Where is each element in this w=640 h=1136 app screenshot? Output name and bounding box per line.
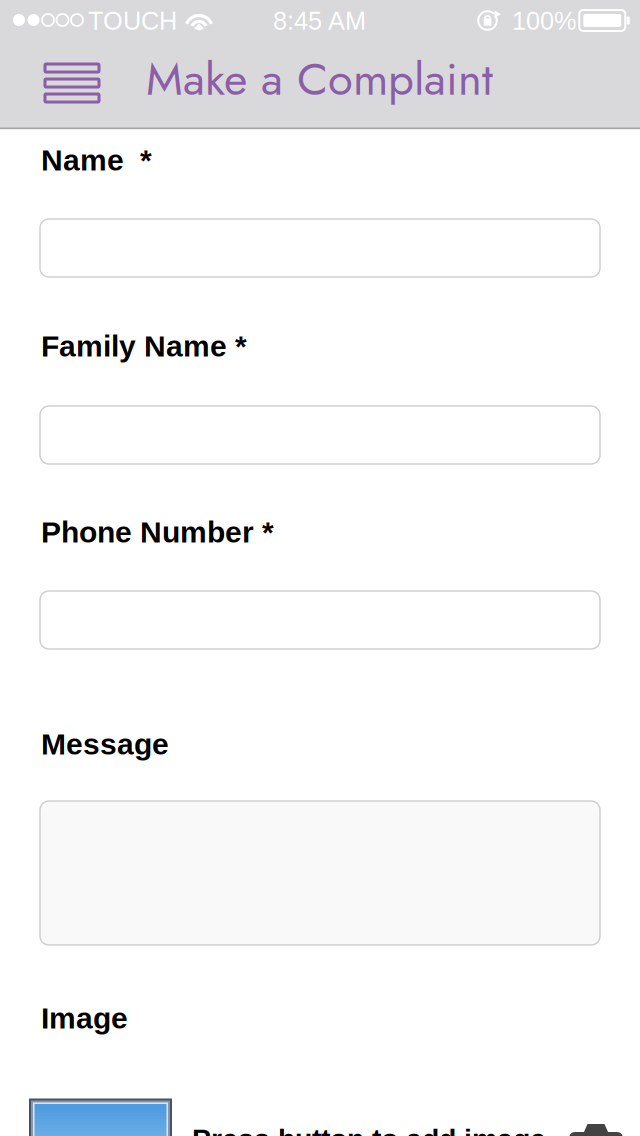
button[interactable]: Family Name * [0,0,640,1136]
button[interactable]: Menu [0,0,640,1136]
button[interactable]: Name * [0,0,640,1136]
staticText: Make a Complaint [146,46,493,112]
staticText: 100% [512,7,577,35]
button[interactable]: Take photo [0,0,640,1136]
staticText: Press button to add image [192,1123,546,1136]
staticText: Phone Number * [41,515,274,549]
button[interactable]: Phone Number * [0,0,640,1136]
staticText: Message [41,727,169,761]
staticText: Name * [41,143,152,177]
staticText: TOUCH [88,7,177,35]
staticText: Image [41,1001,128,1035]
staticText: Family Name * [41,329,247,363]
staticText: 8:45 AM [273,7,366,35]
